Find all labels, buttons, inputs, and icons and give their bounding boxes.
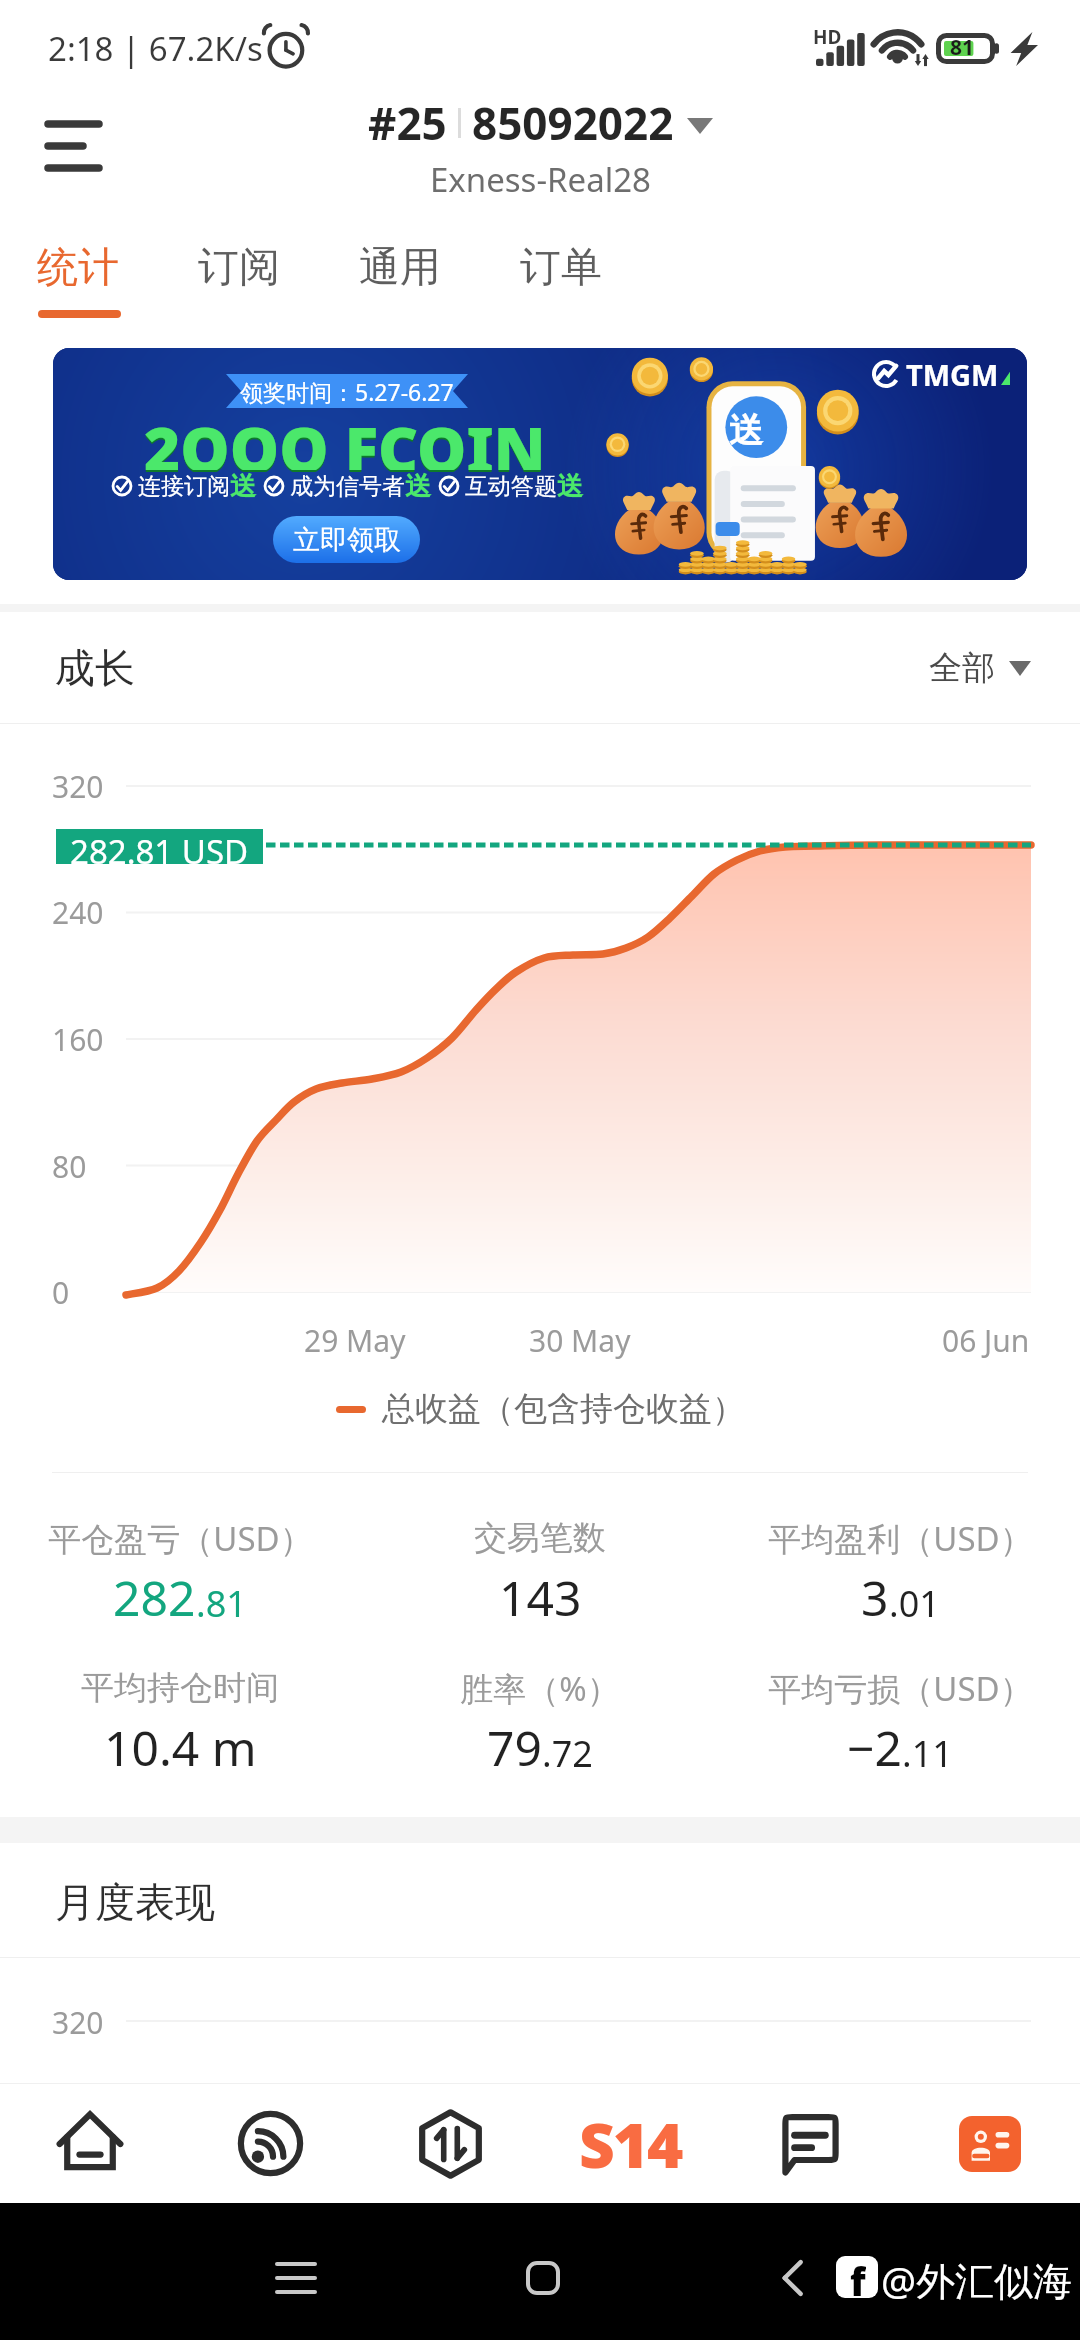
staticText: 30 May [529,1320,631,1361]
staticText: 立即领取 [293,523,401,557]
staticText: f [850,2256,866,2297]
staticText: 平均盈利（USD） [768,1516,1033,1561]
staticText: .01 [889,1579,940,1628]
staticText: 2:18 | 67.2K/s [48,26,263,71]
staticText: 订阅 [198,242,280,294]
staticText: 平均持仓时间 [81,1667,279,1709]
staticText: 240 [52,892,104,933]
staticText: @外汇似海 [881,2253,1073,2301]
staticText: 送 [230,470,256,503]
staticText: #25 [368,93,447,153]
staticText: −2 [847,1715,902,1780]
staticText: 连接订阅 [138,472,230,501]
staticText: 81 [950,33,975,62]
button[interactable]: Recent apps [265,2247,327,2309]
staticText: 交易笔数 [474,1517,606,1559]
button[interactable]: Signals [180,2084,360,2203]
staticText: HD [813,24,842,50]
staticText: 平均亏损（USD） [768,1666,1033,1711]
staticText: 送 [557,470,583,503]
staticText: .72 [542,1729,593,1778]
staticText: 互动答题 [465,472,557,501]
staticText: S14 [579,2102,682,2186]
button[interactable]: 全部 [929,643,1031,693]
staticText: 订单 [520,242,602,294]
staticText: 282.81 USD [70,829,249,864]
staticText: 3 [861,1565,889,1630]
staticText: 282 [113,1565,196,1630]
staticText: 统计 [37,242,119,294]
staticText: 胜率（%） [460,1666,620,1711]
staticText: 总收益（包含持仓收益） [382,1388,745,1430]
button[interactable]: 订阅 [163,206,315,318]
staticText: TMGM [906,355,999,393]
button[interactable]: Promotion banner: 2000 FCOIN [53,348,1027,580]
button[interactable]: Profile [900,2084,1080,2203]
staticText: 月度表现 [55,1877,215,1927]
button[interactable]: Trade [360,2084,540,2203]
staticText: 平仓盈亏（USD） [48,1516,313,1561]
staticText: 0 [52,1272,70,1313]
button[interactable]: #25 [368,93,713,202]
button[interactable]: Home [0,2084,180,2203]
staticText: 80 [52,1146,87,1187]
staticText: 送 [729,409,763,452]
staticText: 成为信号者 [290,472,405,501]
staticText: 29 May [304,1320,406,1361]
staticText: 送 [405,470,431,503]
staticText: 通用 [359,242,441,294]
staticText: Exness-Real28 [430,157,651,202]
button[interactable]: 统计 [2,206,154,318]
button[interactable]: 通用 [324,206,476,318]
staticText: 143 [499,1565,582,1630]
staticText: 320 [52,2002,104,2043]
staticText: .81 [196,1579,247,1628]
button[interactable]: Back [762,2247,824,2309]
button[interactable]: Home [512,2247,574,2309]
button[interactable]: Messages [720,2084,900,2203]
staticText: 2OOO FCOIN [144,408,546,472]
staticText: 成长 [55,643,135,693]
staticText: 06 Jun [942,1320,1030,1361]
staticText: 全部 [929,647,995,689]
staticText: .11 [902,1729,953,1778]
button[interactable]: S14 [540,2084,720,2203]
staticText: 85092022 [472,93,674,153]
button[interactable]: Menu [28,98,118,194]
staticText: 160 [52,1019,104,1060]
staticText: 领奖时间：5.27-6.27 [240,376,454,407]
staticText: 10.4 m [104,1715,257,1780]
staticText: 79 [487,1715,542,1780]
staticText: 2OOO FCOIN [144,406,546,470]
button[interactable]: 立即领取 [273,516,420,563]
button[interactable]: 订单 [485,206,637,318]
staticText: 320 [52,766,104,807]
